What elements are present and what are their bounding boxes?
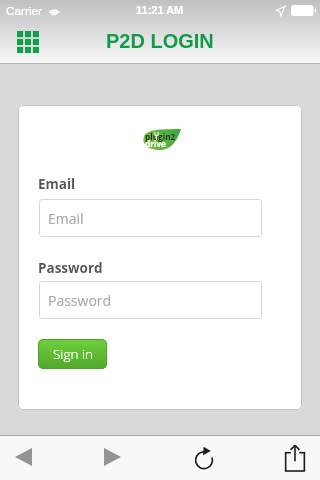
- button[interactable]: Reload: [183, 436, 224, 480]
- staticText: Sign in: [53, 345, 93, 363]
- button[interactable]: Back: [4, 436, 45, 480]
- button[interactable]: Forward: [92, 436, 133, 480]
- staticText: P2D LOGIN: [106, 30, 214, 52]
- button[interactable]: Password: [39, 281, 262, 319]
- button[interactable]: Share: [274, 436, 315, 480]
- staticText: plugin2: [145, 131, 176, 142]
- button[interactable]: Email: [39, 199, 262, 237]
- staticText: Email: [48, 209, 84, 228]
- staticText: Email: [38, 175, 76, 193]
- staticText: Carrier: [6, 4, 43, 17]
- button[interactable]: Menu: [11, 25, 45, 59]
- staticText: drive: [145, 138, 166, 149]
- staticText: Password: [48, 291, 112, 310]
- staticText: Password: [38, 259, 103, 277]
- button[interactable]: Sign in: [38, 339, 107, 369]
- staticText: 11:21 AM: [136, 4, 184, 16]
